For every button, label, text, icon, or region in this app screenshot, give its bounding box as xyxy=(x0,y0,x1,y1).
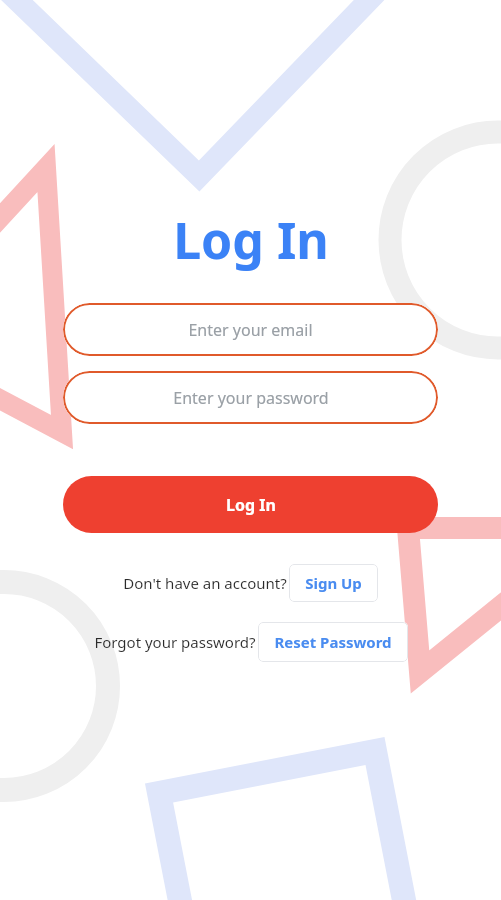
button[interactable]: Email field xyxy=(63,303,438,356)
staticText: Enter your email xyxy=(188,319,313,341)
staticText: Sign Up xyxy=(305,573,362,593)
button[interactable]: Reset Password xyxy=(258,622,408,662)
button[interactable]: Log In xyxy=(63,476,438,533)
staticText: Log In xyxy=(226,494,276,516)
staticText: Log In xyxy=(173,206,329,274)
staticText: Reset Password xyxy=(274,632,392,652)
button[interactable]: Password field xyxy=(63,371,438,424)
staticText: Forgot your password? xyxy=(94,632,256,652)
staticText: Don't have an account? xyxy=(123,573,287,593)
button[interactable]: Sign Up xyxy=(289,564,378,602)
staticText: Enter your password xyxy=(173,387,329,409)
